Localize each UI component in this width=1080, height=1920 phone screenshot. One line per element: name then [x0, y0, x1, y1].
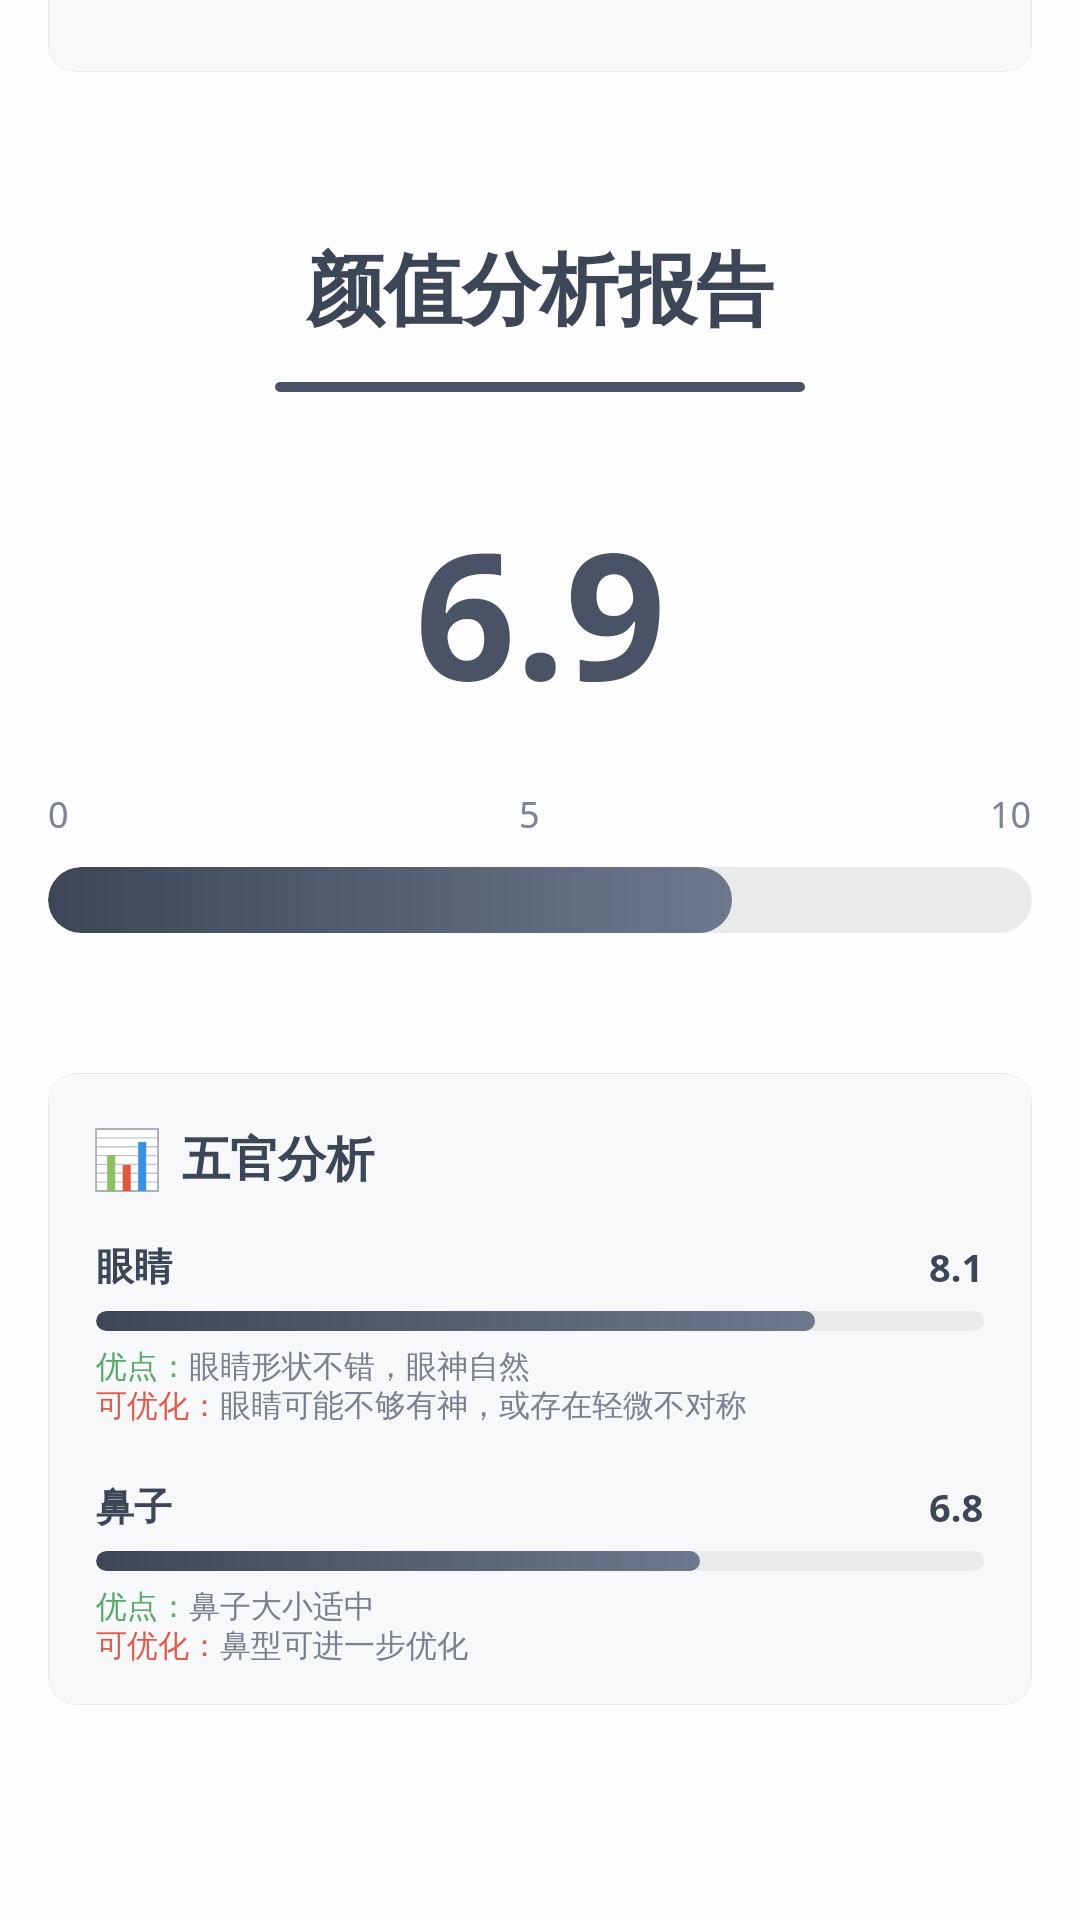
staticText: 10: [990, 790, 1032, 839]
staticText: 可优化：鼻型可进一步优化: [96, 1626, 468, 1665]
staticText: 五官分析: [182, 1130, 374, 1190]
staticText: 鼻子: [96, 1483, 172, 1531]
staticText: 5: [519, 790, 540, 839]
button[interactable]: 五官分析图表: [48, 1073, 1032, 1705]
staticText: 6.9: [415, 492, 666, 732]
staticText: 优点：眼睛形状不错，眼神自然: [96, 1347, 530, 1386]
staticText: 8.1: [929, 1241, 984, 1293]
staticText: 颜值分析报告: [306, 242, 774, 340]
staticText: 6.8: [929, 1481, 984, 1533]
staticText: 眼睛: [96, 1243, 172, 1291]
staticText: 优点：鼻子大小适中: [96, 1587, 375, 1626]
staticText: 可优化：眼睛可能不够有神，或存在轻微不对称: [96, 1386, 747, 1425]
staticText: 0: [48, 790, 69, 839]
other: 五官分析图表: [96, 1129, 158, 1191]
